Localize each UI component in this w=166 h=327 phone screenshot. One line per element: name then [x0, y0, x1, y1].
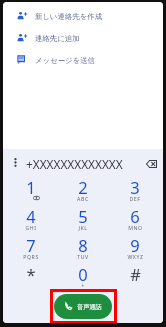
staticText: 1: [26, 176, 36, 198]
staticText: 8: [78, 234, 88, 256]
button[interactable]: 6: [111, 208, 159, 237]
staticText: WXYZ: [127, 253, 144, 260]
button[interactable]: 4: [7, 208, 55, 237]
staticText: 5: [78, 205, 88, 227]
button[interactable]: 5: [59, 208, 107, 237]
staticText: メッセージを送信: [35, 56, 95, 65]
staticText: 4: [26, 205, 36, 227]
staticText: 連絡先に追加: [35, 34, 80, 43]
staticText: MNO: [128, 224, 143, 231]
staticText: +XXXXXXXXXXXXX: [26, 156, 123, 172]
button[interactable]: 1: [7, 179, 55, 208]
staticText: ABC: [77, 195, 89, 202]
staticText: 7: [26, 234, 36, 256]
staticText: 音声通話: [77, 303, 102, 311]
button[interactable]: 連絡先に追加: [3, 27, 163, 49]
staticText: #: [130, 263, 141, 285]
button[interactable]: 9: [111, 237, 159, 266]
staticText: DEF: [129, 195, 141, 202]
button[interactable]: 7: [7, 237, 55, 266]
staticText: JKL: [78, 224, 88, 231]
staticText: 3: [130, 176, 140, 198]
button[interactable]: 2: [59, 179, 107, 208]
button[interactable]: メッセージを送信: [3, 49, 163, 71]
button[interactable]: #: [111, 266, 159, 295]
staticText: +: [81, 282, 85, 289]
staticText: GHI: [25, 224, 37, 231]
staticText: *: [26, 263, 36, 285]
staticText: 9: [130, 234, 140, 256]
button[interactable]: *: [7, 266, 55, 295]
button[interactable]: 8: [59, 237, 107, 266]
staticText: PQRS: [23, 253, 39, 260]
button[interactable]: 0: [59, 266, 107, 295]
button[interactable]: 音声通話: [54, 294, 112, 319]
staticText: 2: [78, 176, 88, 198]
button[interactable]: 3: [111, 179, 159, 208]
button[interactable]: Backspace: [144, 157, 158, 171]
staticText: 6: [130, 205, 140, 227]
staticText: 0: [78, 263, 88, 285]
staticText: TUV: [77, 253, 89, 260]
button[interactable]: More options: [14, 158, 17, 167]
staticText: 新しい連絡先を作成: [35, 12, 103, 21]
button[interactable]: 新しい連絡先を作成: [3, 5, 163, 27]
